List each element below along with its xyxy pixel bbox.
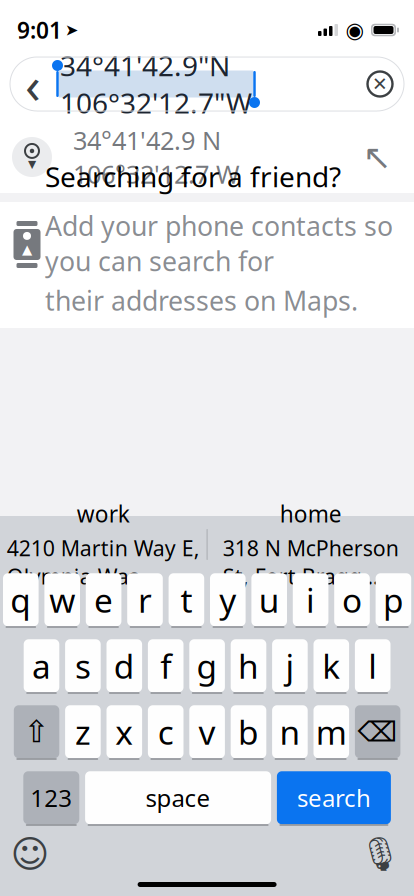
- button[interactable]: a: [24, 639, 59, 694]
- staticText: z: [75, 710, 91, 754]
- button[interactable]: s: [65, 639, 101, 694]
- staticText: w: [49, 578, 75, 622]
- staticText: ⌫: [358, 716, 398, 748]
- button[interactable]: v: [189, 705, 225, 760]
- staticText: ↖: [362, 137, 391, 177]
- staticText: c: [158, 710, 174, 754]
- button[interactable]: Delete: [355, 705, 400, 760]
- button[interactable]: y: [210, 573, 246, 628]
- staticText: m: [316, 710, 347, 754]
- button[interactable]: b: [231, 705, 266, 760]
- button[interactable]: w: [44, 573, 80, 628]
- button[interactable]: r: [127, 573, 163, 628]
- button[interactable]: Shift: [14, 705, 59, 760]
- staticText: y: [219, 578, 236, 622]
- staticText: home: [280, 499, 342, 529]
- button[interactable]: Clear text: [356, 59, 404, 109]
- staticText: space: [146, 782, 211, 814]
- staticText: 34°41'42.9"N 106°32'12.7"W: [60, 47, 252, 121]
- staticText: o: [342, 578, 362, 622]
- staticText: a: [32, 644, 51, 688]
- staticText: l: [368, 644, 377, 688]
- button[interactable]: n: [272, 705, 308, 760]
- button[interactable]: ▼: [0, 121, 414, 193]
- staticText: Searching for a friend?: [45, 158, 341, 195]
- button[interactable]: p: [376, 573, 411, 628]
- staticText: search: [297, 782, 371, 814]
- button[interactable]: q: [3, 573, 39, 628]
- staticText: g: [197, 644, 218, 688]
- staticText: n: [279, 710, 300, 754]
- staticText: 123: [30, 782, 72, 814]
- button[interactable]: e: [86, 573, 121, 628]
- staticText: i: [306, 578, 315, 622]
- staticText: ☺: [11, 833, 50, 875]
- staticText: 🎙: [359, 835, 401, 873]
- staticText: e: [94, 578, 113, 622]
- button[interactable]: home: [208, 516, 414, 573]
- staticText: j: [285, 644, 294, 688]
- button[interactable]: o: [334, 573, 370, 628]
- button[interactable]: h: [231, 639, 266, 694]
- staticText: f: [160, 644, 171, 688]
- button[interactable]: Back: [10, 59, 56, 109]
- staticText: work: [77, 499, 130, 529]
- button[interactable]: c: [148, 705, 183, 760]
- staticText: p: [383, 578, 404, 622]
- button[interactable]: Numbers: [23, 771, 79, 826]
- button[interactable]: Dictation: [357, 831, 403, 877]
- staticText: 4210 Martin Way E, Olympia Was…: [7, 534, 200, 590]
- staticText: ‹: [25, 50, 41, 118]
- staticText: d: [114, 644, 135, 688]
- staticText: t: [180, 578, 192, 622]
- staticText: ✕: [372, 73, 388, 95]
- button[interactable]: i: [293, 573, 328, 628]
- button[interactable]: t: [169, 573, 204, 628]
- button[interactable]: Emoji: [7, 831, 53, 877]
- staticText: 34°41'42.9 N 106°32'12.7 W: [73, 123, 240, 191]
- button[interactable]: u: [251, 573, 287, 628]
- button[interactable]: d: [106, 639, 142, 694]
- staticText: s: [75, 644, 91, 688]
- button[interactable]: f: [148, 639, 183, 694]
- button[interactable]: g: [189, 639, 225, 694]
- button[interactable]: space: [85, 771, 271, 826]
- staticText: q: [10, 578, 31, 622]
- button[interactable]: j: [272, 639, 308, 694]
- staticText: u: [259, 578, 280, 622]
- staticText: Add your phone contacts so you can searc…: [45, 208, 393, 279]
- staticText: ◉: [345, 18, 364, 42]
- staticText: h: [238, 644, 259, 688]
- button[interactable]: k: [313, 639, 349, 694]
- staticText: ▼: [28, 158, 36, 170]
- button[interactable]: x: [106, 705, 142, 760]
- staticText: v: [199, 710, 216, 754]
- staticText: 318 N McPherson St, Fort Bragg…: [223, 534, 399, 590]
- staticText: ⇧: [24, 714, 50, 749]
- staticText: ➤: [65, 21, 78, 39]
- button[interactable]: work: [0, 516, 207, 573]
- staticText: 9:01: [17, 15, 62, 45]
- staticText: x: [115, 710, 133, 754]
- staticText: b: [238, 710, 259, 754]
- staticText: r: [138, 578, 152, 622]
- staticText: their addresses on Maps.: [45, 283, 358, 318]
- button[interactable]: m: [313, 705, 349, 760]
- button[interactable]: search: [277, 771, 391, 826]
- staticText: k: [322, 644, 340, 688]
- button[interactable]: z: [65, 705, 101, 760]
- staticText: ▲: [22, 242, 32, 257]
- button[interactable]: l: [355, 639, 390, 694]
